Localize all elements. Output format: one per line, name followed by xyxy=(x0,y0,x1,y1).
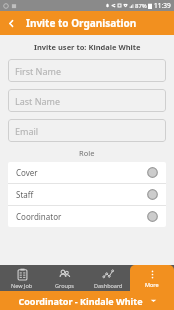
button[interactable]: Coordinator xyxy=(8,206,166,227)
staticText: Role xyxy=(79,148,95,158)
staticText: 11:39 xyxy=(154,1,171,10)
staticText: Dashboard xyxy=(94,282,123,289)
button[interactable]: Last Name xyxy=(8,89,166,112)
staticText: Coordinator xyxy=(16,211,147,222)
staticText: Invite user to: Kindale White xyxy=(34,42,141,52)
staticText: Staff xyxy=(16,189,147,200)
button[interactable]: Back xyxy=(0,12,22,34)
staticText: Groups xyxy=(55,282,74,289)
staticText: More xyxy=(145,281,159,288)
button[interactable]: More xyxy=(130,265,174,291)
button[interactable]: Groups xyxy=(43,265,86,291)
staticText: Invite to Organisation xyxy=(26,16,137,30)
staticText: First Name xyxy=(15,65,61,77)
staticText: New Job xyxy=(11,282,33,289)
staticText: Coordinator - Kindale White xyxy=(18,295,143,307)
button[interactable]: Coordinator - Kindale White xyxy=(0,291,174,310)
button[interactable]: Email xyxy=(8,119,166,142)
staticText: Cover xyxy=(16,167,147,178)
button[interactable]: Cover xyxy=(8,162,166,183)
button[interactable]: New Job xyxy=(0,265,43,291)
button[interactable]: Staff xyxy=(8,184,166,205)
button[interactable]: First Name xyxy=(8,59,166,82)
staticText: Last Name xyxy=(15,95,61,107)
staticText: Email xyxy=(15,125,39,137)
button[interactable]: Dashboard xyxy=(86,265,130,291)
staticText: 87% xyxy=(135,2,147,10)
